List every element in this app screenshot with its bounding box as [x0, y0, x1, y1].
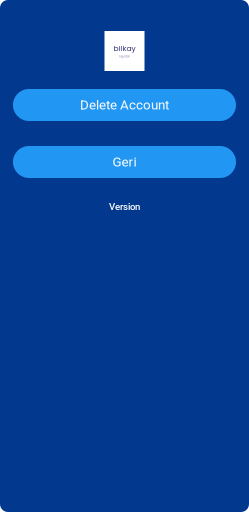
staticText: lojistik — [119, 54, 130, 59]
button[interactable]: Delete Account — [13, 89, 236, 121]
staticText: Version — [109, 201, 140, 212]
staticText: bilkay — [113, 43, 135, 54]
staticText: Geri — [112, 154, 136, 170]
button[interactable]: Geri — [13, 146, 236, 178]
staticText: Delete Account — [80, 97, 169, 113]
